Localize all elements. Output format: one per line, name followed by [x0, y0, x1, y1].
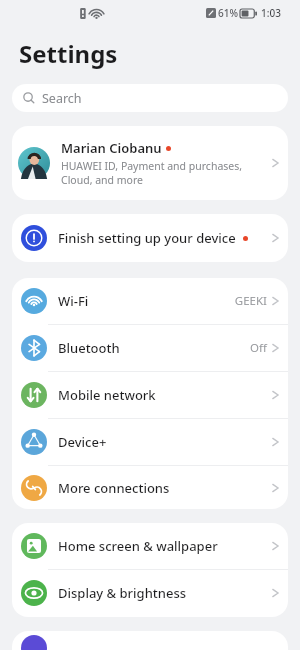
button[interactable]: Search — [12, 84, 288, 112]
button[interactable]: Display & brightness — [12, 570, 288, 616]
staticText: HUAWEI ID, Payment and purchases, Cloud,… — [61, 159, 243, 187]
staticText: Home screen & wallpaper — [58, 537, 218, 555]
button[interactable]: Finish setting up your device — [12, 214, 288, 262]
staticText: Settings — [19, 37, 118, 70]
staticText: GEEKI — [234, 293, 267, 309]
staticText: Off — [250, 340, 267, 356]
button[interactable]: Marian Ciobanu — [12, 126, 288, 200]
staticText: Bluetooth — [58, 339, 120, 357]
staticText: Display & brightness — [58, 584, 187, 602]
button[interactable]: Device+ — [12, 419, 288, 465]
staticText: Mobile network — [58, 386, 156, 404]
button[interactable]: Mobile network — [12, 372, 288, 418]
staticText: Device+ — [58, 433, 107, 451]
button[interactable]: Home screen & wallpaper — [12, 523, 288, 569]
staticText: Search — [42, 90, 82, 107]
staticText: Marian Ciobanu — [61, 139, 162, 157]
button[interactable]: Bluetooth — [12, 325, 288, 371]
button[interactable]: More connections — [12, 466, 288, 509]
staticText: Finish setting up your device — [58, 229, 236, 247]
button[interactable]: Wi-Fi — [12, 278, 288, 324]
staticText: More connections — [58, 479, 170, 497]
staticText: 1:03 — [261, 6, 281, 20]
staticText: 61% — [218, 6, 238, 20]
staticText: Wi-Fi — [58, 292, 89, 310]
